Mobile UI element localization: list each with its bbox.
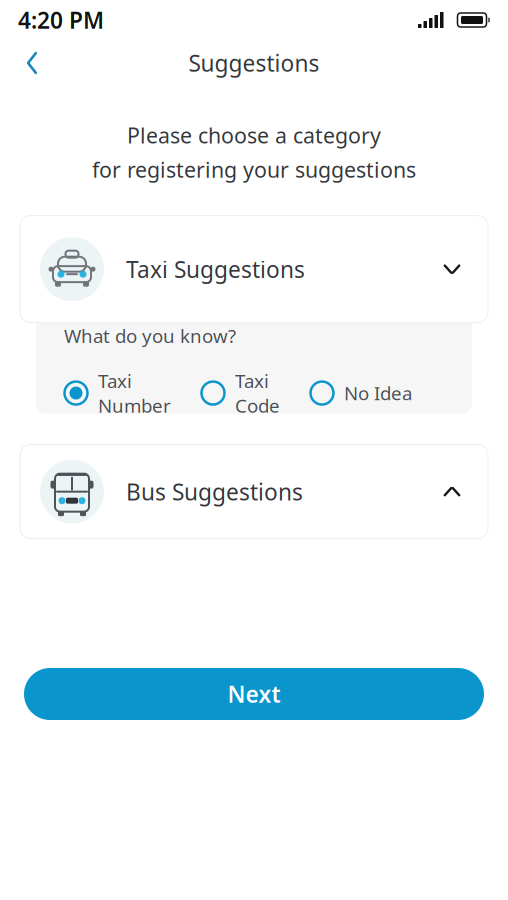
staticText: Please choose a category [127,121,381,149]
staticText: Bus Suggestions [126,477,303,507]
staticText: Taxi Number [98,368,171,418]
button[interactable]: Back [10,41,54,85]
staticText: No Idea [344,381,412,405]
button[interactable]: Taxi Number [64,368,171,418]
staticText: 4:20 PM [18,5,104,35]
button[interactable]: No Idea [310,381,412,405]
staticText: Next [227,679,280,709]
button[interactable]: Taxi Suggestions [20,216,488,323]
staticText: Suggestions [188,48,319,78]
staticText: Taxi Code [235,368,280,418]
button[interactable]: Next [24,668,484,720]
staticText: What do you know? [64,323,236,348]
staticText: Taxi Suggestions [126,254,305,284]
button[interactable]: Taxi Code [201,368,280,418]
button[interactable]: Bus Suggestions [20,445,488,539]
staticText: for registering your suggestions [92,155,416,184]
